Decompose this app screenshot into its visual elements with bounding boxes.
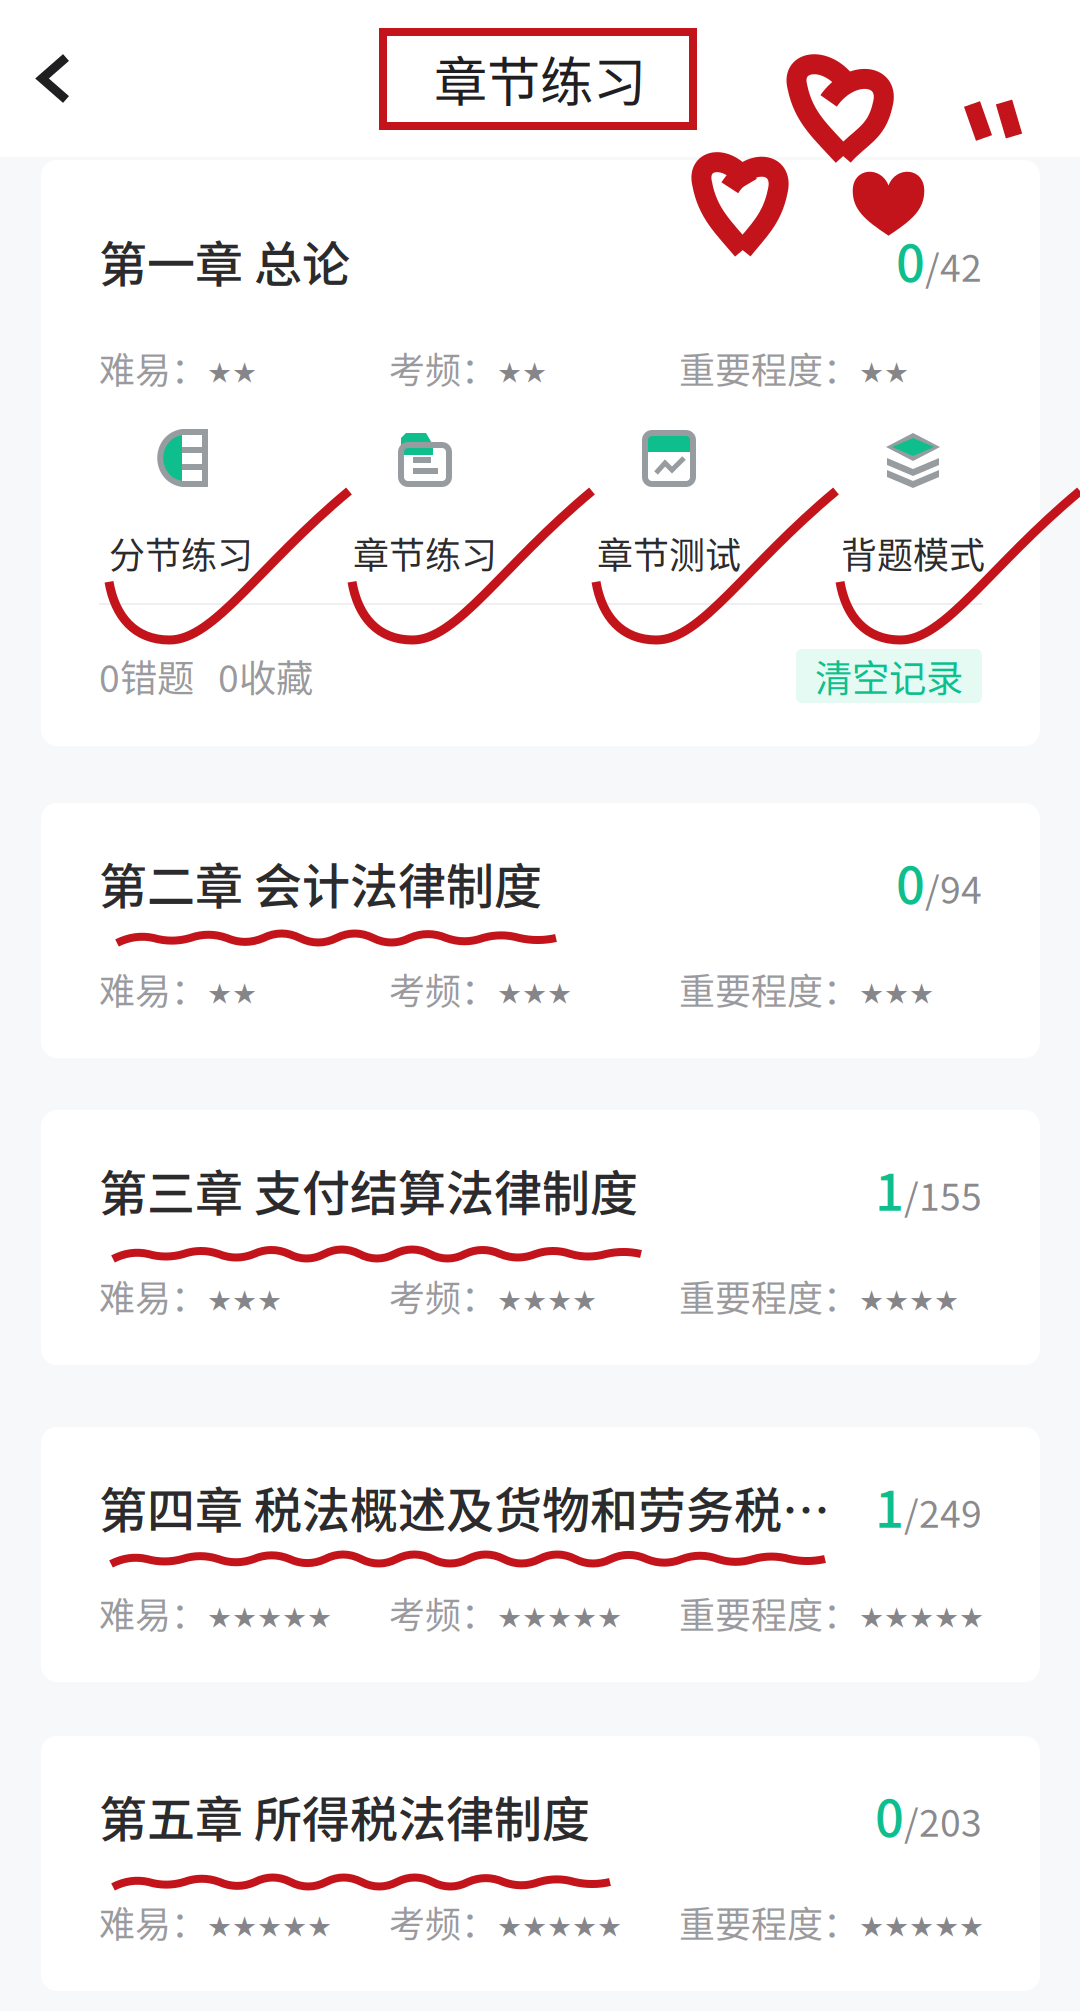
button[interactable]: 清空记录 (796, 649, 982, 703)
button[interactable]: 章节测试 (547, 427, 791, 579)
staticText: ★★ (207, 977, 257, 1010)
staticText: ★★★★ (497, 1284, 597, 1317)
staticText: 重要程度： (679, 342, 859, 394)
staticText: 章节测试 (597, 527, 741, 579)
staticText: 考频： (389, 1896, 497, 1948)
staticText: ★★★ (859, 977, 934, 1010)
staticText: 难易： (99, 1270, 207, 1322)
button[interactable]: 第二章 会计法律制度 (41, 803, 1040, 1058)
staticText: ★★ (497, 356, 547, 389)
staticText: 考频： (389, 963, 497, 1015)
staticText: 1 (875, 1152, 904, 1225)
staticText: 重要程度： (679, 1270, 859, 1322)
staticText: 分节练习 (109, 527, 253, 579)
button[interactable]: 第三章 支付结算法律制度 (41, 1110, 1040, 1365)
staticText: 第四章 税法概述及货物和劳务税… (99, 1472, 830, 1542)
staticText: 重要程度： (679, 1896, 859, 1948)
button[interactable]: 第五章 所得税法律制度 (41, 1736, 1040, 1991)
button[interactable]: 分节练习 (59, 427, 303, 579)
staticText: 0 (875, 1778, 904, 1851)
staticText: 重要程度： (679, 1587, 859, 1639)
staticText: 难易： (99, 1896, 207, 1948)
staticText: /94 (925, 860, 982, 915)
staticText: 0 (896, 223, 925, 296)
staticText: 考频： (389, 342, 497, 394)
staticText: 重要程度： (679, 963, 859, 1015)
staticText: /249 (904, 1484, 982, 1539)
staticText: 背题模式 (841, 527, 985, 579)
button[interactable]: 返回 (0, 32, 96, 124)
staticText: 第五章 所得税法律制度 (99, 1781, 590, 1851)
staticText: 第三章 支付结算法律制度 (99, 1155, 638, 1225)
staticText: /155 (904, 1167, 982, 1222)
staticText: 第二章 会计法律制度 (99, 848, 542, 918)
button[interactable]: 章节练习 (303, 427, 547, 579)
staticText: 第一章 总论 (99, 226, 350, 296)
staticText: ★★★★★ (859, 1601, 984, 1634)
staticText: 难易： (99, 963, 207, 1015)
staticText: /42 (925, 238, 982, 293)
staticText: 0 (896, 845, 925, 918)
staticText: 考频： (389, 1270, 497, 1322)
button[interactable]: 第四章 税法概述及货物和劳务税… (41, 1427, 1040, 1682)
staticText: ★★ (859, 356, 909, 389)
staticText: ★★★ (207, 1284, 282, 1317)
button[interactable]: 背题模式 (791, 427, 1035, 579)
staticText: 章节练习 (353, 527, 497, 579)
staticText: ★★★★★ (497, 1601, 622, 1634)
staticText: /203 (904, 1793, 982, 1848)
staticText: ★★★★ (859, 1284, 959, 1317)
staticText: ★★★★★ (859, 1910, 984, 1943)
staticText: ★★★★★ (207, 1601, 332, 1634)
staticText: 清空记录 (815, 649, 963, 703)
staticText: 难易： (99, 1587, 207, 1639)
staticText: ★★★ (497, 977, 572, 1010)
staticText: ★★★★★ (497, 1910, 622, 1943)
staticText: 0错题 0收藏 (99, 649, 313, 703)
staticText: ★★ (207, 356, 257, 389)
staticText: 1 (875, 1469, 904, 1542)
staticText: ★★★★★ (207, 1910, 332, 1943)
staticText: 考频： (389, 1587, 497, 1639)
staticText: 章节练习 (434, 40, 646, 117)
staticText: 难易： (99, 342, 207, 394)
